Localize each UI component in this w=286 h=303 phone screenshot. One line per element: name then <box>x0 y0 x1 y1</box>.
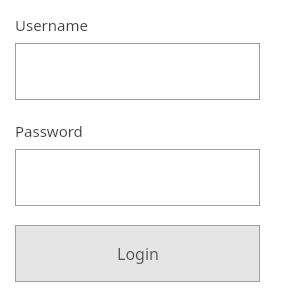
button[interactable]: Username input field <box>15 43 260 100</box>
staticText: Login <box>117 243 159 265</box>
button[interactable]: Password input field <box>15 149 260 206</box>
staticText: Username <box>15 15 88 35</box>
button[interactable]: Login <box>15 225 260 282</box>
staticText: Password <box>15 121 83 141</box>
